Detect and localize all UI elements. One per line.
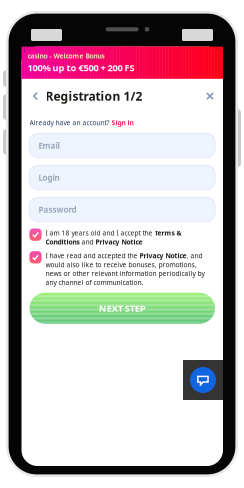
button[interactable]: Login	[29, 166, 215, 190]
staticText: casino - Welcome Bonus	[27, 51, 104, 60]
staticText: NEXT STEP	[99, 302, 146, 314]
button[interactable]: Close	[200, 85, 220, 107]
staticText: Registration 1/2	[45, 88, 142, 104]
button[interactable]: I am 18 years old and I accept the Terms…	[29, 229, 215, 246]
staticText: Sign in	[111, 118, 133, 127]
button[interactable]: Email	[29, 134, 215, 158]
staticText: 100% up to €500 + 200 FS	[27, 61, 134, 74]
button[interactable]: Back	[25, 85, 45, 107]
button[interactable]: Password	[29, 198, 215, 222]
staticText: Email	[38, 140, 59, 151]
staticText: Already have an account?	[29, 118, 111, 127]
staticText: Password	[38, 204, 76, 215]
staticText: Login	[38, 172, 59, 183]
button[interactable]: Sign in	[111, 118, 133, 127]
staticText: 100% up to €500 + 200 FS	[27, 61, 134, 74]
staticText: I am 18 years old and I accept the Terms…	[45, 229, 181, 246]
button[interactable]: NEXT STEP	[29, 293, 215, 324]
staticText: casino - Welcome Bonus	[27, 51, 104, 60]
staticText: I have read and accepted the Privacy Not…	[45, 251, 204, 287]
button[interactable]: I have read and accepted the Privacy Not…	[29, 251, 215, 287]
button[interactable]: Open chat	[183, 360, 223, 400]
